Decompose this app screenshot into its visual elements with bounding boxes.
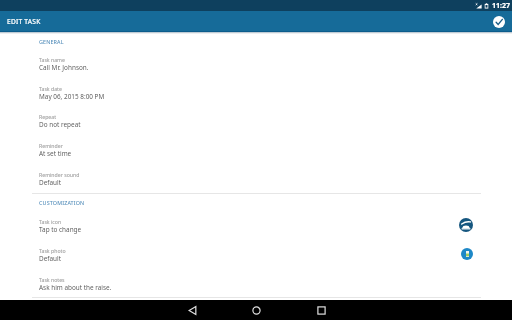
button[interactable]: Task photo — [0, 243, 512, 271]
staticText: 11:27 — [492, 1, 510, 11]
button[interactable]: Home — [245, 300, 267, 320]
button[interactable]: Task notes — [0, 272, 512, 300]
staticText: Task notes — [39, 276, 65, 283]
staticText: GENERAL — [39, 38, 64, 45]
staticText: EDIT TASK — [7, 17, 41, 26]
button[interactable]: Save task — [490, 13, 508, 31]
button[interactable]: Task icon — [0, 214, 512, 242]
staticText: Task photo — [39, 247, 66, 254]
staticText: Task date — [39, 85, 62, 92]
staticText: Do not repeat — [39, 120, 81, 129]
staticText: Task name — [39, 56, 65, 63]
staticText: May 06, 2015 8:00 PM — [39, 92, 105, 101]
staticText: Task icon — [39, 218, 62, 225]
staticText: Repeat — [39, 113, 57, 120]
staticText: Ask him about the raise. — [39, 283, 112, 292]
staticText: Reminder sound — [39, 171, 80, 178]
button[interactable]: Task date — [0, 81, 512, 109]
staticText: Default — [39, 178, 61, 187]
button[interactable]: Task name — [0, 52, 512, 80]
staticText: At set time — [39, 149, 72, 158]
staticText: CUSTOMIZATION — [39, 199, 85, 206]
button[interactable]: Reminder — [0, 138, 512, 166]
staticText: Call Mr. Johnson. — [39, 63, 89, 72]
button[interactable]: Recent apps — [310, 300, 332, 320]
button[interactable]: Change task icon — [459, 218, 473, 232]
staticText: Default — [39, 254, 61, 263]
staticText: Tap to change — [39, 225, 82, 234]
button[interactable]: Reminder sound — [0, 167, 512, 195]
button[interactable]: Repeat — [0, 109, 512, 137]
staticText: Reminder — [39, 142, 63, 149]
button[interactable]: Back — [181, 300, 203, 320]
button[interactable]: Change task photo — [461, 248, 473, 260]
